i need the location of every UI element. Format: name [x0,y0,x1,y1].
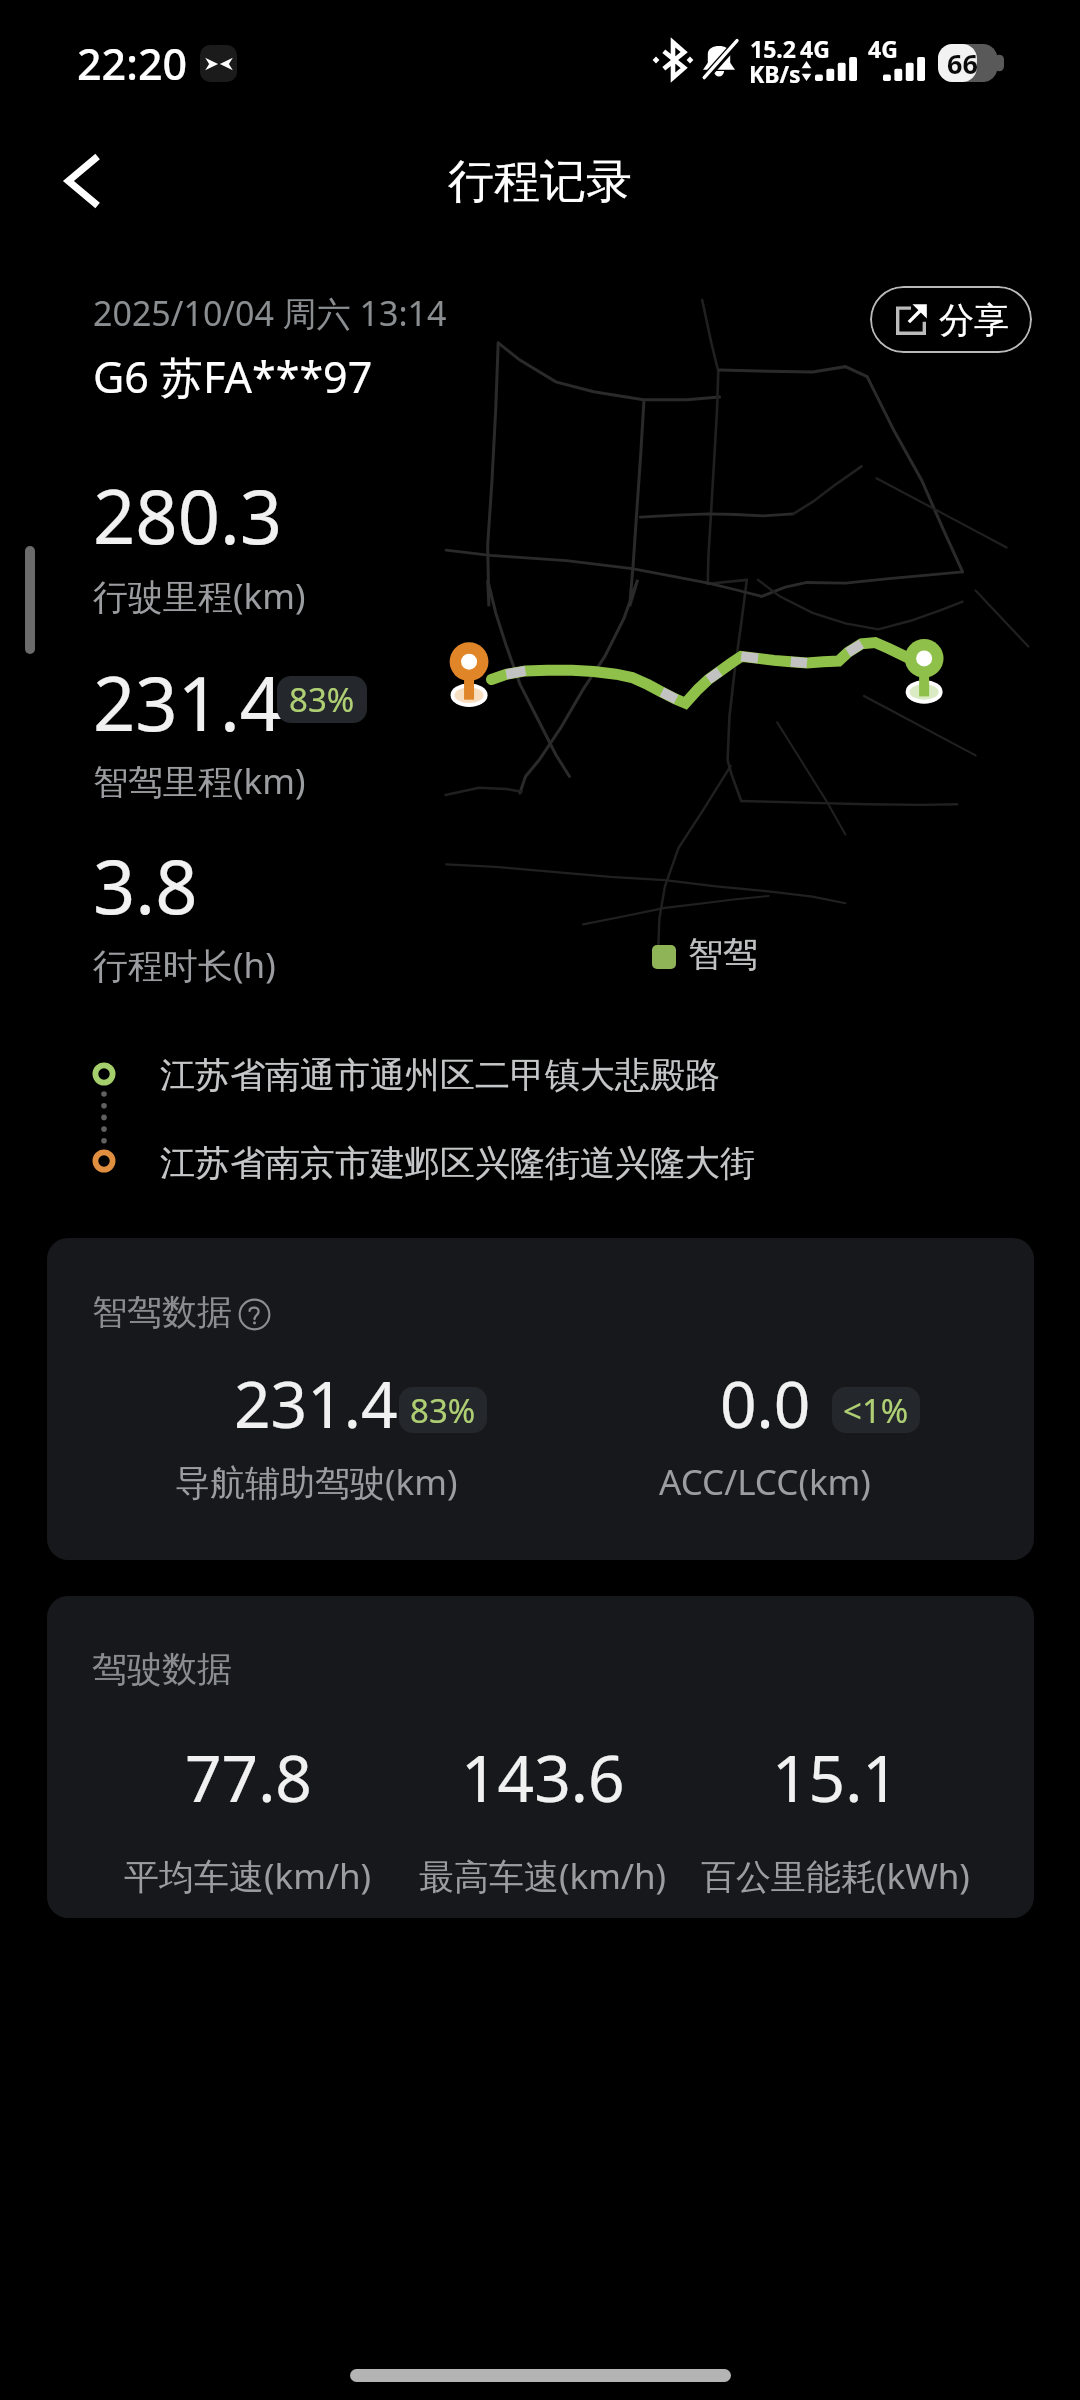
staticText: G6 苏FA***97 [93,347,373,406]
button[interactable]: 驾驶数据 [47,1596,1034,1918]
staticText: 江苏省南京市建邺区兴隆街道兴隆大街 [160,1141,755,1185]
staticText: 15.2 [750,33,796,64]
staticText: 83% [289,677,355,722]
button[interactable]: Back [40,138,126,224]
staticText: ACC/LCC(km) [659,1458,871,1506]
staticText: 143.6 [461,1734,625,1821]
staticText: 231.4 [234,1360,398,1447]
staticText: 22:20 [77,34,188,93]
staticText: 15.1 [772,1734,899,1821]
staticText: 77.8 [185,1734,312,1821]
staticText: 行驶里程(km) [93,572,306,620]
staticText: 导航辅助驾驶(km) [175,1458,458,1506]
staticText: 江苏省南通市通州区二甲镇大悲殿路 [160,1053,720,1097]
staticText: KB/s [749,58,801,89]
staticText: 百公里能耗(kWh) [701,1852,970,1900]
button[interactable]: 智驾数据 [47,1238,1034,1560]
staticText: 智驾数据 [92,1290,232,1334]
staticText: <1% [843,1388,909,1433]
staticText: 231.4 [93,652,283,753]
staticText: 280.3 [93,465,283,566]
button[interactable]: 江苏省南通市通州区二甲镇大悲殿路 [0,1035,1080,1200]
staticText: 智驾里程(km) [93,757,306,805]
staticText: 0.0 [720,1360,811,1447]
staticText: 分享 [939,298,1009,342]
staticText: 2025/10/04 周六 13:14 [93,290,447,336]
staticText: 最高车速(km/h) [419,1852,667,1900]
staticText: 行程时长(h) [93,941,276,989]
staticText: 66 [947,45,978,82]
staticText: 平均车速(km/h) [124,1852,372,1900]
button[interactable]: 分享 [870,286,1032,353]
staticText: 4G [868,33,898,64]
staticText: 4G [800,33,830,64]
staticText: 3.8 [93,835,198,936]
staticText: 驾驶数据 [92,1647,232,1691]
staticText: 行程记录 [448,153,632,211]
staticText: 智驾 [688,932,758,976]
staticText: 83% [410,1388,476,1433]
